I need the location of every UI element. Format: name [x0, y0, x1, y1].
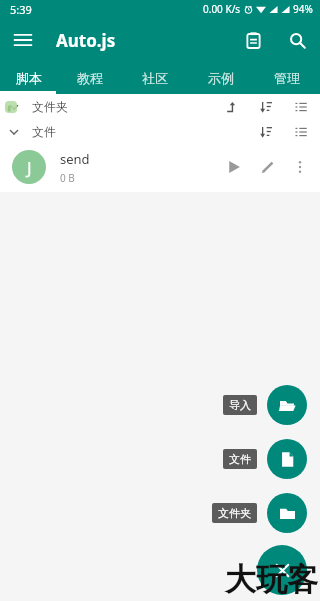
button[interactable]: More options — [286, 153, 314, 181]
button[interactable]: 脚本 — [0, 62, 57, 94]
staticText: 文件夹 — [32, 99, 68, 114]
button[interactable]: Run — [220, 153, 248, 181]
staticText: 文件 — [32, 124, 56, 139]
staticText: 社区 — [142, 70, 168, 86]
button[interactable]: Open navigation drawer — [6, 23, 40, 57]
button[interactable]: Import — [267, 385, 307, 425]
staticText: 文件 — [229, 452, 251, 466]
staticText: 管理 — [274, 70, 300, 86]
button[interactable]: Edit — [254, 153, 282, 181]
staticText: 5:39 — [10, 2, 32, 17]
staticText: 0.00 K/s — [203, 2, 241, 16]
button[interactable]: 导入 — [223, 395, 257, 415]
button[interactable]: Logs — [236, 23, 270, 57]
button[interactable]: Up one level — [220, 96, 242, 118]
staticText: Auto.js — [56, 29, 116, 52]
staticText: 导入 — [229, 398, 251, 412]
button[interactable]: New file — [267, 439, 307, 479]
staticText: 脚本 — [16, 70, 42, 86]
button[interactable]: J — [0, 144, 320, 190]
button[interactable]: 教程 — [57, 62, 122, 94]
button[interactable]: 示例 — [188, 62, 254, 94]
button[interactable]: Close menu — [257, 545, 307, 595]
button[interactable]: View options — [290, 121, 312, 143]
button[interactable]: Sort — [255, 121, 277, 143]
button[interactable]: 文件 — [0, 119, 320, 144]
button[interactable]: Search — [280, 23, 314, 57]
button[interactable]: New folder — [267, 493, 307, 533]
button[interactable]: 文件 — [223, 449, 257, 469]
button[interactable]: 社区 — [122, 62, 188, 94]
staticText: 文件夹 — [218, 506, 251, 520]
staticText: 示例 — [208, 70, 234, 86]
staticText: 教程 — [77, 70, 103, 86]
button[interactable]: 文件夹 — [212, 503, 257, 523]
button[interactable]: View options — [290, 96, 312, 118]
button[interactable]: Sort — [255, 96, 277, 118]
staticText: J — [27, 156, 32, 179]
staticText: 94% — [293, 2, 313, 16]
button[interactable]: 管理 — [254, 62, 320, 94]
staticText: 大玩客 — [225, 560, 318, 599]
button[interactable]: 文件夹 — [0, 94, 320, 119]
staticText: send — [60, 150, 90, 168]
staticText: 0 B — [60, 171, 75, 185]
